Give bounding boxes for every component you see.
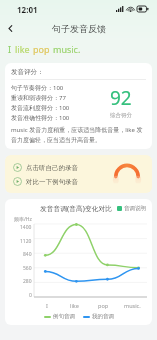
button[interactable]: 对比一下例句录音	[13, 177, 78, 186]
staticText: 0	[29, 292, 32, 299]
staticText: 例句音调	[53, 313, 75, 320]
staticText: 发音流利度得分：	[11, 104, 59, 112]
staticText: 1400	[20, 224, 32, 231]
staticText: I	[46, 302, 48, 309]
button[interactable]: 点击听自己的录音	[13, 163, 78, 172]
staticText: 我的音调	[92, 313, 114, 320]
staticText: 对比一下例句录音	[26, 178, 78, 186]
staticText: pop	[98, 302, 109, 309]
staticText: 频率/Hz	[14, 216, 32, 223]
staticText: 句子发音反馈	[52, 23, 106, 34]
staticText: pop	[33, 43, 50, 55]
staticText: 12:01	[17, 4, 38, 15]
staticText: like	[15, 43, 30, 55]
staticText: music 发音力度稍重，应该适当降低音量，like 发音力度偏轻，应当适当升高…	[11, 126, 146, 144]
staticText: 840	[23, 251, 32, 258]
staticText: 音调说明	[124, 205, 146, 212]
staticText: 77	[59, 94, 66, 102]
staticText: 560	[23, 265, 32, 272]
button[interactable]: Back	[0, 18, 20, 38]
staticText: 92	[110, 85, 132, 111]
staticText: like	[70, 302, 79, 309]
staticText: 重读和弱读得分：	[11, 94, 59, 102]
staticText: 点击听自己的录音	[26, 164, 78, 172]
staticText: 发音准确性得分：	[11, 114, 59, 122]
staticText: music.	[53, 43, 81, 55]
staticText: 100	[59, 104, 70, 112]
staticText: 句子节奏得分：	[11, 84, 53, 92]
button[interactable]: 音调说明	[116, 205, 147, 212]
staticText: 100	[59, 114, 70, 122]
staticText: 综合得分	[110, 112, 132, 119]
staticText: 1120	[20, 238, 32, 245]
staticText: 280	[23, 278, 32, 285]
staticText: 发音音调(音高)变化对比	[36, 204, 116, 213]
staticText: music.	[124, 302, 141, 309]
staticText: 发音评分：	[11, 68, 44, 76]
staticText: 100	[53, 84, 64, 92]
staticText: I	[8, 43, 12, 55]
